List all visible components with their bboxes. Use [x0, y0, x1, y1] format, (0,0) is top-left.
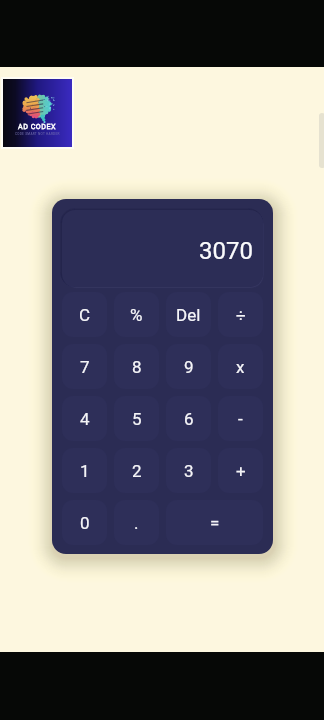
- button[interactable]: ÷: [218, 292, 263, 337]
- staticText: 8: [132, 357, 142, 377]
- button[interactable]: 0: [62, 500, 107, 545]
- staticText: +: [236, 461, 246, 481]
- staticText: -: [238, 409, 243, 429]
- button[interactable]: -: [218, 396, 263, 441]
- staticText: 2: [132, 461, 142, 481]
- staticText: AD CODEX: [18, 122, 57, 130]
- staticText: 9: [184, 357, 194, 377]
- button[interactable]: 9: [166, 344, 211, 389]
- staticText: 0: [80, 513, 90, 533]
- staticText: 4: [80, 409, 90, 429]
- staticText: 1: [80, 461, 90, 481]
- staticText: .: [134, 513, 139, 533]
- button[interactable]: %: [114, 292, 159, 337]
- button[interactable]: 1: [62, 448, 107, 493]
- staticText: 5: [132, 409, 142, 429]
- staticText: %: [130, 305, 143, 325]
- button[interactable]: 2: [114, 448, 159, 493]
- button[interactable]: 7: [62, 344, 107, 389]
- button[interactable]: .: [114, 500, 159, 545]
- button[interactable]: =: [166, 500, 263, 545]
- staticText: x: [236, 357, 245, 377]
- button[interactable]: C: [62, 292, 107, 337]
- staticText: 7: [80, 357, 90, 377]
- staticText: CODE SMART NOT HARDER: [15, 132, 60, 136]
- staticText: Del: [176, 305, 201, 325]
- button[interactable]: x: [218, 344, 263, 389]
- button[interactable]: +: [218, 448, 263, 493]
- staticText: =: [210, 513, 220, 533]
- staticText: 3: [184, 461, 194, 481]
- staticText: ÷: [236, 305, 246, 325]
- button[interactable]: 8: [114, 344, 159, 389]
- staticText: 6: [184, 409, 194, 429]
- staticText: 3070: [199, 237, 253, 265]
- button[interactable]: 6: [166, 396, 211, 441]
- button[interactable]: Del: [166, 292, 211, 337]
- button[interactable]: 3: [166, 448, 211, 493]
- button[interactable]: 4: [62, 396, 107, 441]
- button[interactable]: 5: [114, 396, 159, 441]
- staticText: C: [79, 305, 91, 325]
- button[interactable]: AD CODEX logo: [1, 77, 74, 149]
